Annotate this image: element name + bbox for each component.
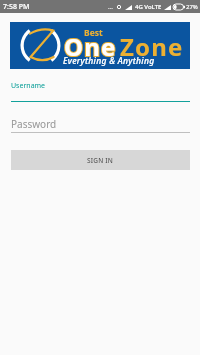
button[interactable]: SIGN IN: [11, 150, 190, 170]
staticText: One: [64, 30, 117, 63]
staticText: Everything & Anything: [63, 55, 155, 67]
staticText: 27%: [186, 3, 198, 11]
staticText: 7:58 PM: [3, 2, 30, 12]
staticText: One: [64, 30, 117, 63]
staticText: Best: [84, 27, 103, 39]
staticText: Zone: [120, 30, 184, 63]
staticText: ...: [108, 3, 113, 11]
staticText: Username: [11, 81, 46, 91]
staticText: Password: [11, 117, 57, 131]
staticText: SIGN IN: [87, 156, 114, 165]
staticText: 4G VoLTE: [135, 3, 162, 11]
